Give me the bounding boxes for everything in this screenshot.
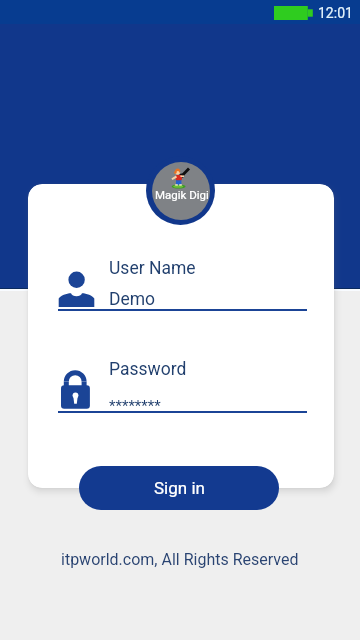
staticText: ******** (109, 397, 161, 415)
button[interactable]: Sign in (79, 466, 279, 510)
staticText: Sign in (154, 478, 205, 498)
staticText: 12:01 (318, 5, 353, 21)
staticText: Password (109, 359, 187, 380)
other: Battery full (274, 6, 313, 20)
staticText: Demo (109, 289, 156, 310)
staticText: User Name (109, 258, 196, 279)
staticText: Magik Digi (155, 188, 209, 201)
staticText: itpworld.com, All Rights Reserved (61, 550, 299, 569)
